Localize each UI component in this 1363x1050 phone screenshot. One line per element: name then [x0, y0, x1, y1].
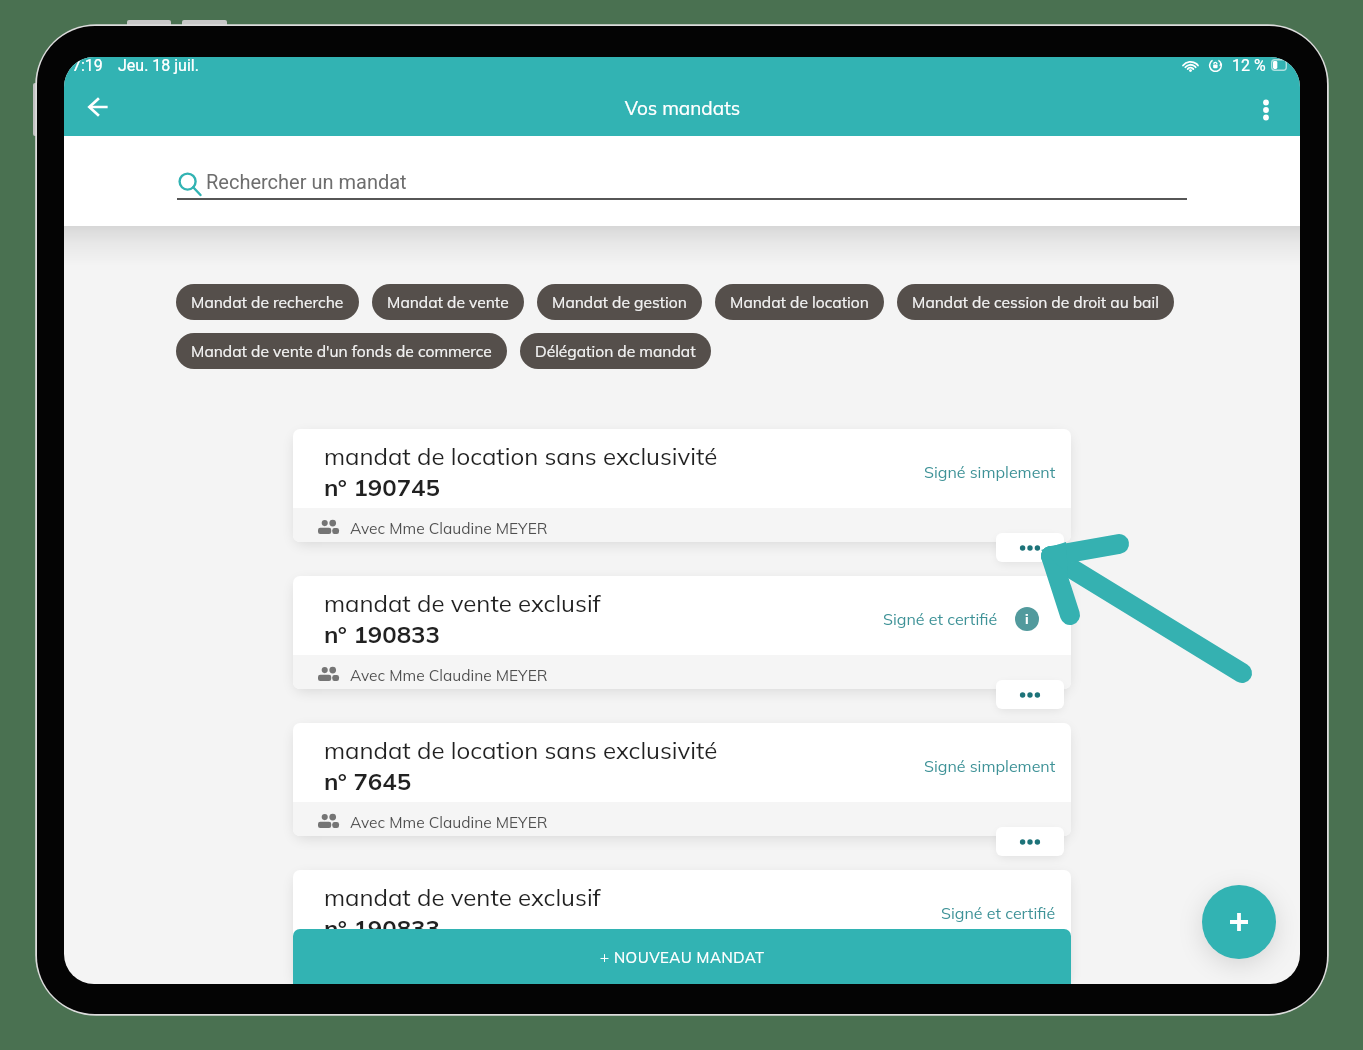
staticText: Rechercher un mandat [206, 170, 407, 193]
staticText: 12 % [1232, 57, 1266, 75]
button[interactable]: Délégation de mandat [520, 333, 711, 369]
button[interactable]: Actions [996, 533, 1064, 562]
button[interactable]: Mandat de vente [372, 284, 524, 320]
button[interactable]: Mandat de gestion [537, 284, 702, 320]
button[interactable]: mandat de location sans exclusivité [293, 429, 1071, 542]
staticText: n° 190833 [324, 913, 440, 943]
button[interactable]: Information [1015, 607, 1039, 631]
staticText: Signé simplement [924, 462, 1056, 482]
staticText: Mandat de gestion [552, 292, 687, 312]
staticText: n° 190833 [324, 619, 440, 649]
button[interactable]: Mandat de cession de droit au bail [897, 284, 1174, 320]
staticText: Mandat de location [730, 292, 869, 312]
button[interactable]: Ajouter un mandat [1202, 885, 1276, 959]
button[interactable]: Mandat de recherche [176, 284, 359, 320]
staticText: Signé simplement [924, 756, 1056, 776]
button[interactable]: Retour [64, 83, 133, 136]
staticText: Avec Mme Claudine MEYER [350, 812, 548, 831]
staticText: Jeu. 18 juil. [118, 57, 199, 75]
staticText: Mandat de vente [387, 292, 509, 312]
button[interactable]: Actions [996, 827, 1064, 856]
staticText: mandat de vente exclusif [324, 588, 601, 618]
staticText: 7:19 [72, 57, 103, 75]
staticText: Mandat de recherche [191, 292, 344, 312]
staticText: Signé et certifié [941, 903, 1056, 923]
staticText: Délégation de mandat [535, 341, 696, 361]
staticText: + NOUVEAU MANDAT [600, 948, 765, 967]
staticText: Signé et certifié [883, 609, 998, 629]
button[interactable]: + NOUVEAU MANDAT [293, 929, 1071, 984]
staticText: n° 190745 [324, 472, 440, 502]
button[interactable]: mandat de vente exclusif [293, 576, 1071, 689]
staticText: n° 7645 [324, 766, 412, 796]
button[interactable]: Mandat de vente d'un fonds de commerce [176, 333, 507, 369]
staticText: Mandat de cession de droit au bail [912, 292, 1159, 312]
staticText: Mandat de vente d'un fonds de commerce [191, 341, 492, 361]
button[interactable]: mandat de vente exclusif [293, 870, 1071, 983]
button[interactable]: Mandat de location [715, 284, 884, 320]
staticText: mandat de location sans exclusivité [324, 735, 718, 765]
staticText: i [1025, 610, 1029, 628]
button[interactable]: mandat de location sans exclusivité [293, 723, 1071, 836]
staticText: Vos mandats [133, 96, 1232, 120]
staticText: Avec Mme Claudine MEYER [350, 665, 548, 684]
staticText: mandat de vente exclusif [324, 882, 601, 912]
button[interactable]: Actions [996, 680, 1064, 709]
staticText: Avec Mme Claudine MEYER [350, 518, 548, 537]
staticText: mandat de location sans exclusivité [324, 441, 718, 471]
button[interactable]: Plus d'options [1232, 83, 1300, 136]
